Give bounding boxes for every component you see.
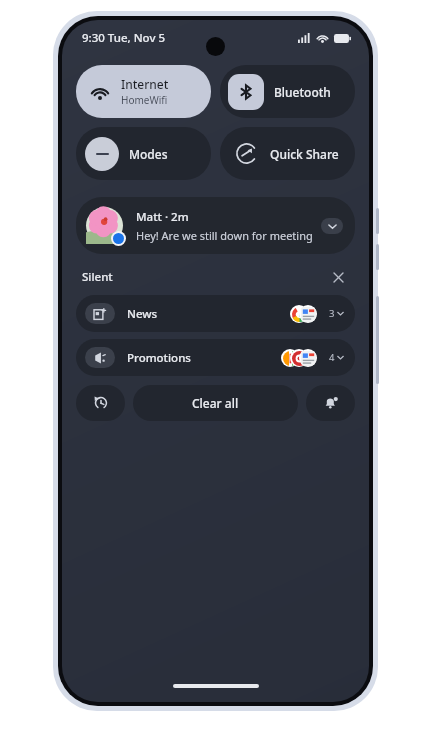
staticText: Internet <box>121 76 169 92</box>
button[interactable]: News <box>76 295 355 332</box>
staticText: News <box>127 306 158 322</box>
button[interactable]: Notification history <box>76 385 125 421</box>
button[interactable]: Notification settings <box>306 385 355 421</box>
staticText: Silent <box>82 269 113 285</box>
staticText: 3 <box>329 307 335 320</box>
staticText: 4 <box>329 351 335 364</box>
button[interactable]: Matt · 2m <box>76 197 355 254</box>
staticText: 9:30 Tue, Nov 5 <box>82 30 166 46</box>
button[interactable]: Clear all <box>133 385 298 421</box>
staticText: Bluetooth <box>274 84 331 100</box>
staticText: Modes <box>129 146 168 162</box>
button[interactable]: Internet <box>76 65 211 118</box>
staticText: Hey! Are we still down for meeting up on… <box>136 228 315 243</box>
staticText: Clear all <box>192 395 239 411</box>
button[interactable]: Expand notification <box>321 218 343 234</box>
button[interactable]: Promotions <box>76 339 355 376</box>
staticText: Matt · 2m <box>136 209 189 225</box>
staticText: Promotions <box>127 350 191 366</box>
button[interactable]: Dismiss silent section <box>329 268 347 286</box>
button[interactable]: Quick Share <box>220 127 355 180</box>
staticText: HomeWifi <box>121 93 168 107</box>
button[interactable]: Modes <box>76 127 211 180</box>
button[interactable]: Bluetooth <box>220 65 355 118</box>
staticText: Quick Share <box>270 146 339 162</box>
